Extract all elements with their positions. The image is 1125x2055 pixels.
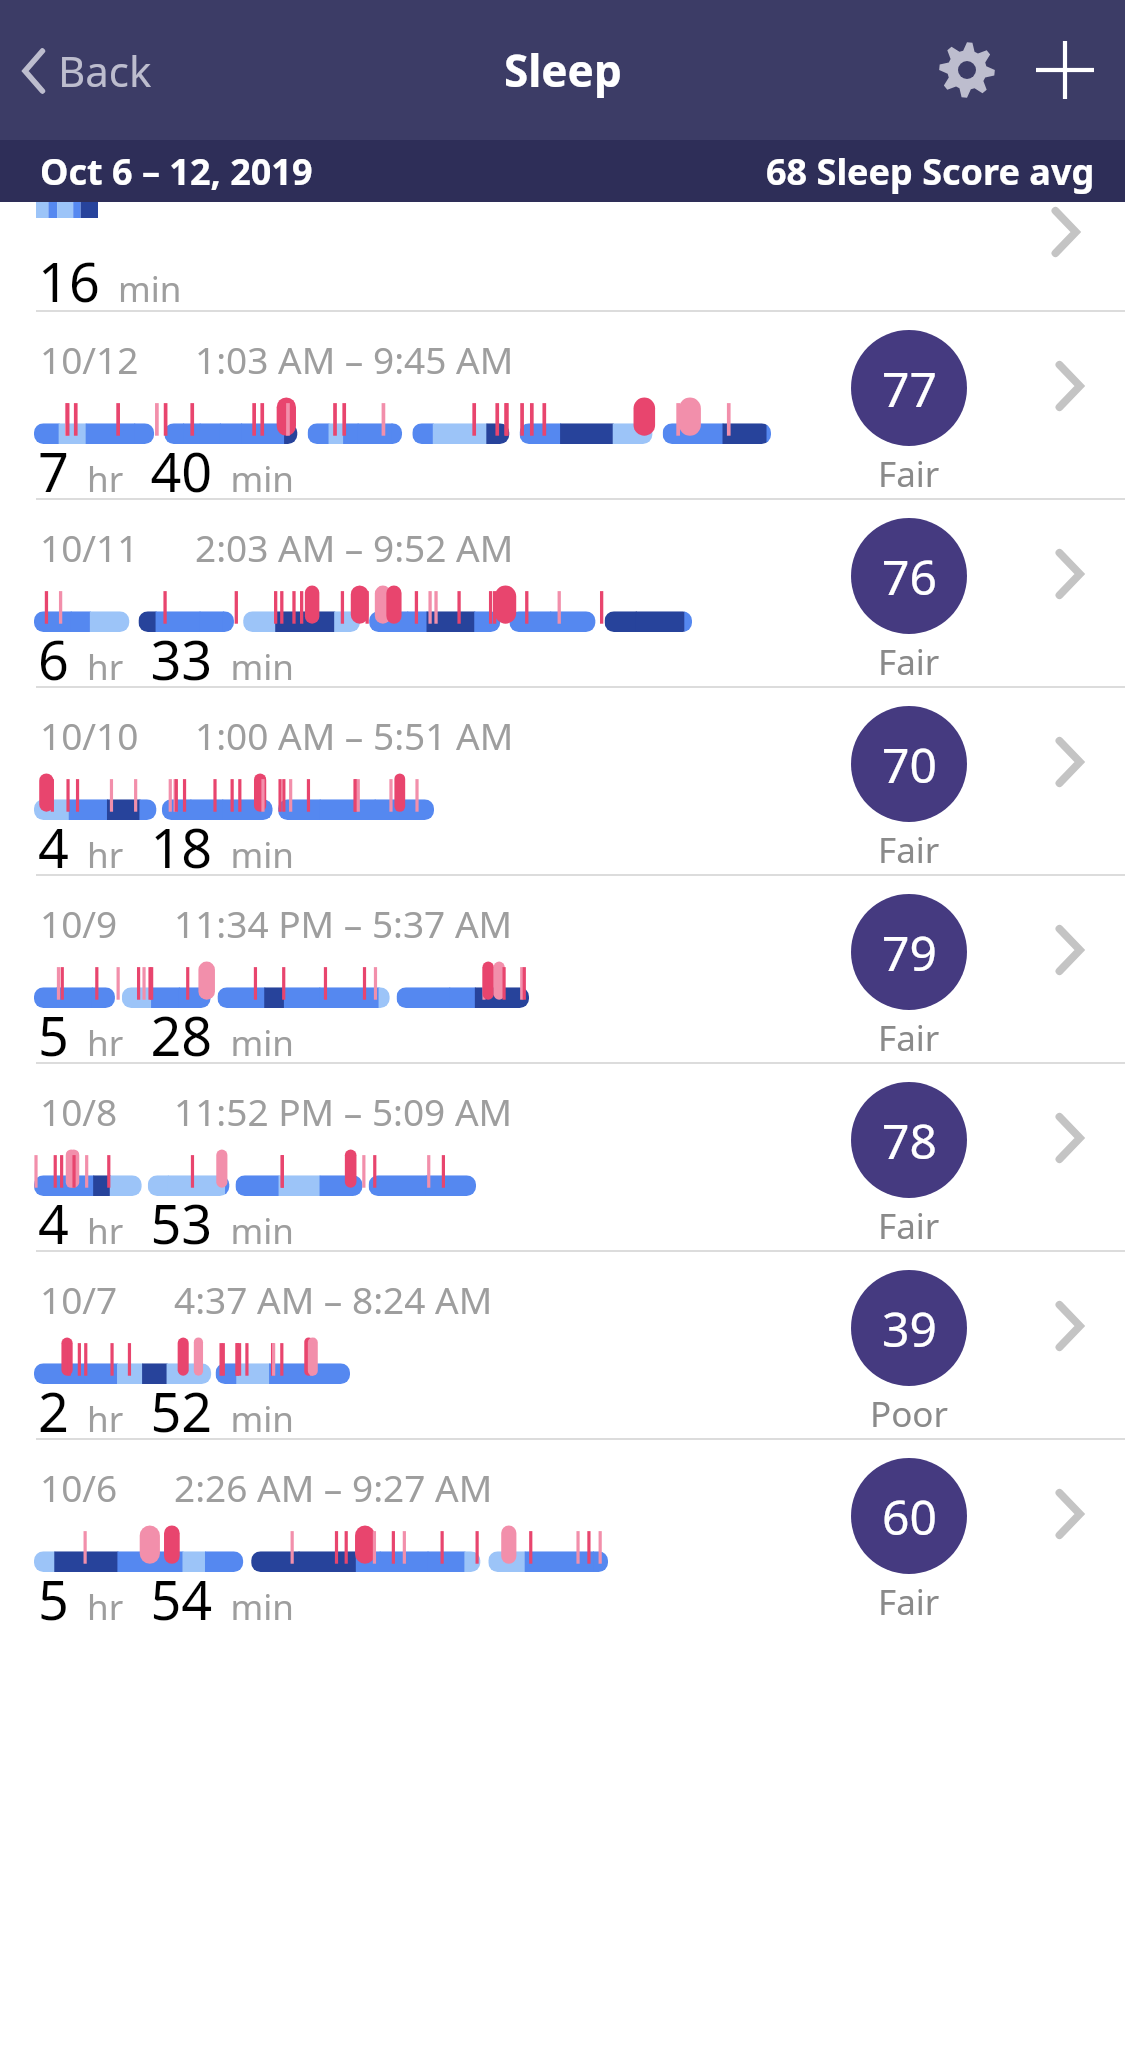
staticText: Fair xyxy=(878,1202,940,1250)
staticText: 16 min xyxy=(38,244,182,310)
other: Details xyxy=(1053,734,1085,790)
staticText: Fair xyxy=(878,1578,940,1626)
button[interactable]: 16 min xyxy=(0,202,1125,310)
staticText: Poor xyxy=(870,1390,948,1438)
staticText: 10/9 xyxy=(40,898,118,948)
staticText: Fair xyxy=(878,638,940,686)
staticText: 5 hr 28 min xyxy=(38,998,294,1062)
button[interactable]: 10/11 xyxy=(0,500,1125,686)
staticText: 10/11 xyxy=(40,522,139,572)
staticText: 4 hr 53 min xyxy=(38,1186,294,1250)
staticText: Fair xyxy=(878,1014,940,1062)
staticText: Fair xyxy=(878,826,940,874)
staticText: 2 hr 52 min xyxy=(38,1374,294,1438)
staticText: 70 xyxy=(882,732,937,797)
other: Details xyxy=(1053,1298,1085,1354)
staticText: 7 hr 40 min xyxy=(38,434,294,498)
button[interactable]: 10/12 xyxy=(0,312,1125,498)
button[interactable]: 10/10 xyxy=(0,688,1125,874)
staticText: 6 hr 33 min xyxy=(38,622,294,686)
staticText: 2:26 AM – 9:27 AM xyxy=(174,1462,493,1512)
staticText: Oct 6 – 12, 2019 xyxy=(40,147,313,196)
staticText: Sleep xyxy=(504,40,622,100)
other: Details xyxy=(1053,1486,1085,1542)
staticText: 2:03 AM – 9:52 AM xyxy=(195,522,514,572)
other: Details xyxy=(1053,922,1085,978)
staticText: 68 Sleep Score avg xyxy=(766,147,1095,196)
staticText: 78 xyxy=(882,1108,937,1173)
other: Details xyxy=(1053,1110,1085,1166)
staticText: 5 hr 54 min xyxy=(38,1562,294,1626)
staticText: 10/12 xyxy=(40,334,139,384)
staticText: 4 hr 18 min xyxy=(38,810,294,874)
staticText: 10/10 xyxy=(40,710,139,760)
staticText: Back xyxy=(58,42,152,99)
staticText: 76 xyxy=(882,544,937,609)
staticText: 1:00 AM – 5:51 AM xyxy=(195,710,514,760)
button[interactable]: 10/8 xyxy=(0,1064,1125,1250)
staticText: 10/8 xyxy=(40,1086,118,1136)
button[interactable]: Settings xyxy=(931,34,1003,106)
button[interactable]: Add sleep log xyxy=(1029,34,1101,106)
staticText: 39 xyxy=(882,1296,937,1361)
button[interactable]: Back xyxy=(12,34,160,107)
staticText: 1:03 AM – 9:45 AM xyxy=(195,334,514,384)
staticText: 4:37 AM – 8:24 AM xyxy=(174,1274,493,1324)
button[interactable]: 10/9 xyxy=(0,876,1125,1062)
button[interactable]: 10/7 xyxy=(0,1252,1125,1438)
other: Details xyxy=(1053,358,1085,414)
staticText: 60 xyxy=(882,1484,937,1549)
staticText: 10/6 xyxy=(40,1462,118,1512)
button[interactable]: 10/6 xyxy=(0,1440,1125,1626)
staticText: 10/7 xyxy=(40,1274,118,1324)
staticText: 79 xyxy=(882,920,937,985)
staticText: 11:52 PM – 5:09 AM xyxy=(174,1086,513,1136)
staticText: Fair xyxy=(878,450,940,498)
staticText: 11:34 PM – 5:37 AM xyxy=(174,898,513,948)
other: Details xyxy=(1053,546,1085,602)
other: Details xyxy=(1049,204,1081,260)
staticText: 77 xyxy=(882,356,937,421)
